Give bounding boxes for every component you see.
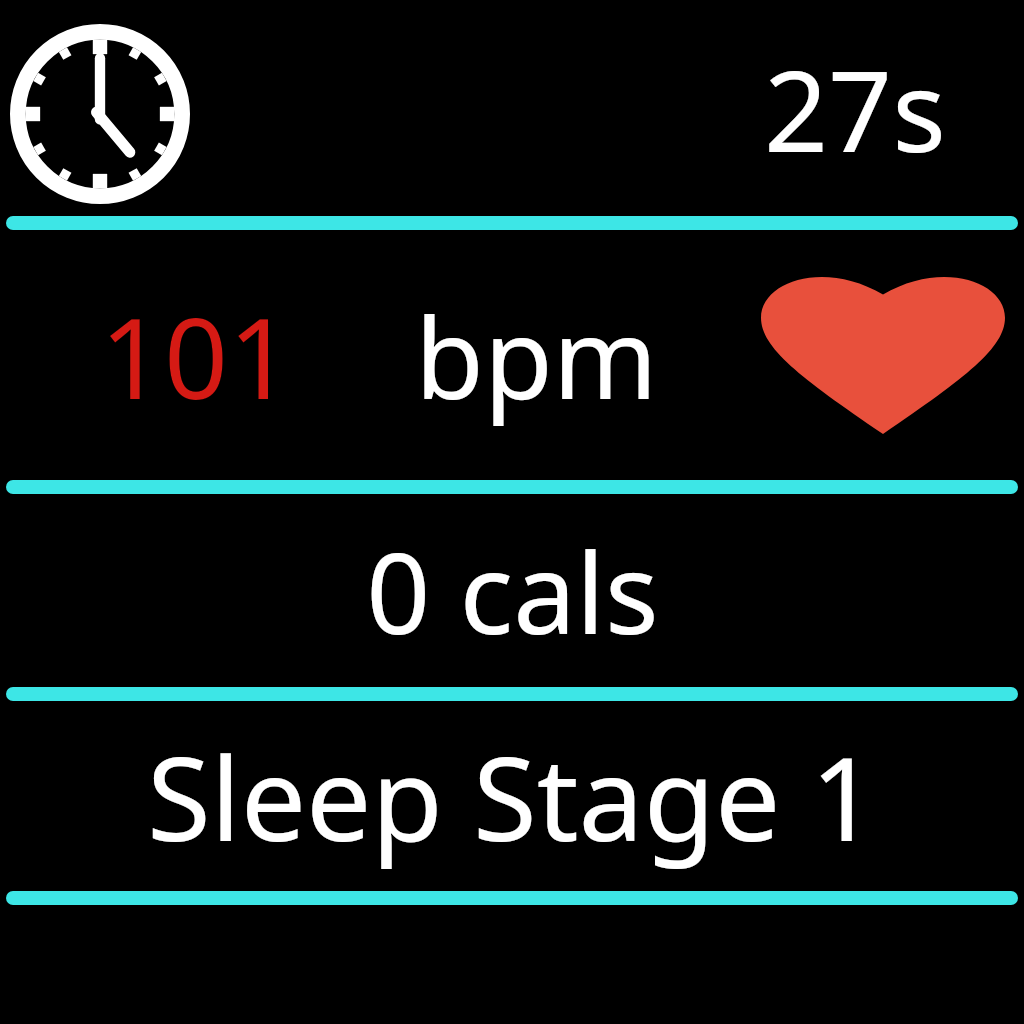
- staticText: 27s: [764, 32, 946, 185]
- button[interactable]: 0 cals: [0, 494, 1024, 687]
- button[interactable]: Sleep Stage 1: [0, 701, 1024, 891]
- staticText: Sleep Stage 1: [147, 717, 877, 875]
- staticText: 101: [100, 279, 293, 432]
- button[interactable]: Elapsed time: [10, 24, 190, 204]
- staticText: bpm: [415, 279, 658, 432]
- button[interactable]: 101: [0, 230, 1024, 480]
- staticText: 0 cals: [366, 514, 659, 667]
